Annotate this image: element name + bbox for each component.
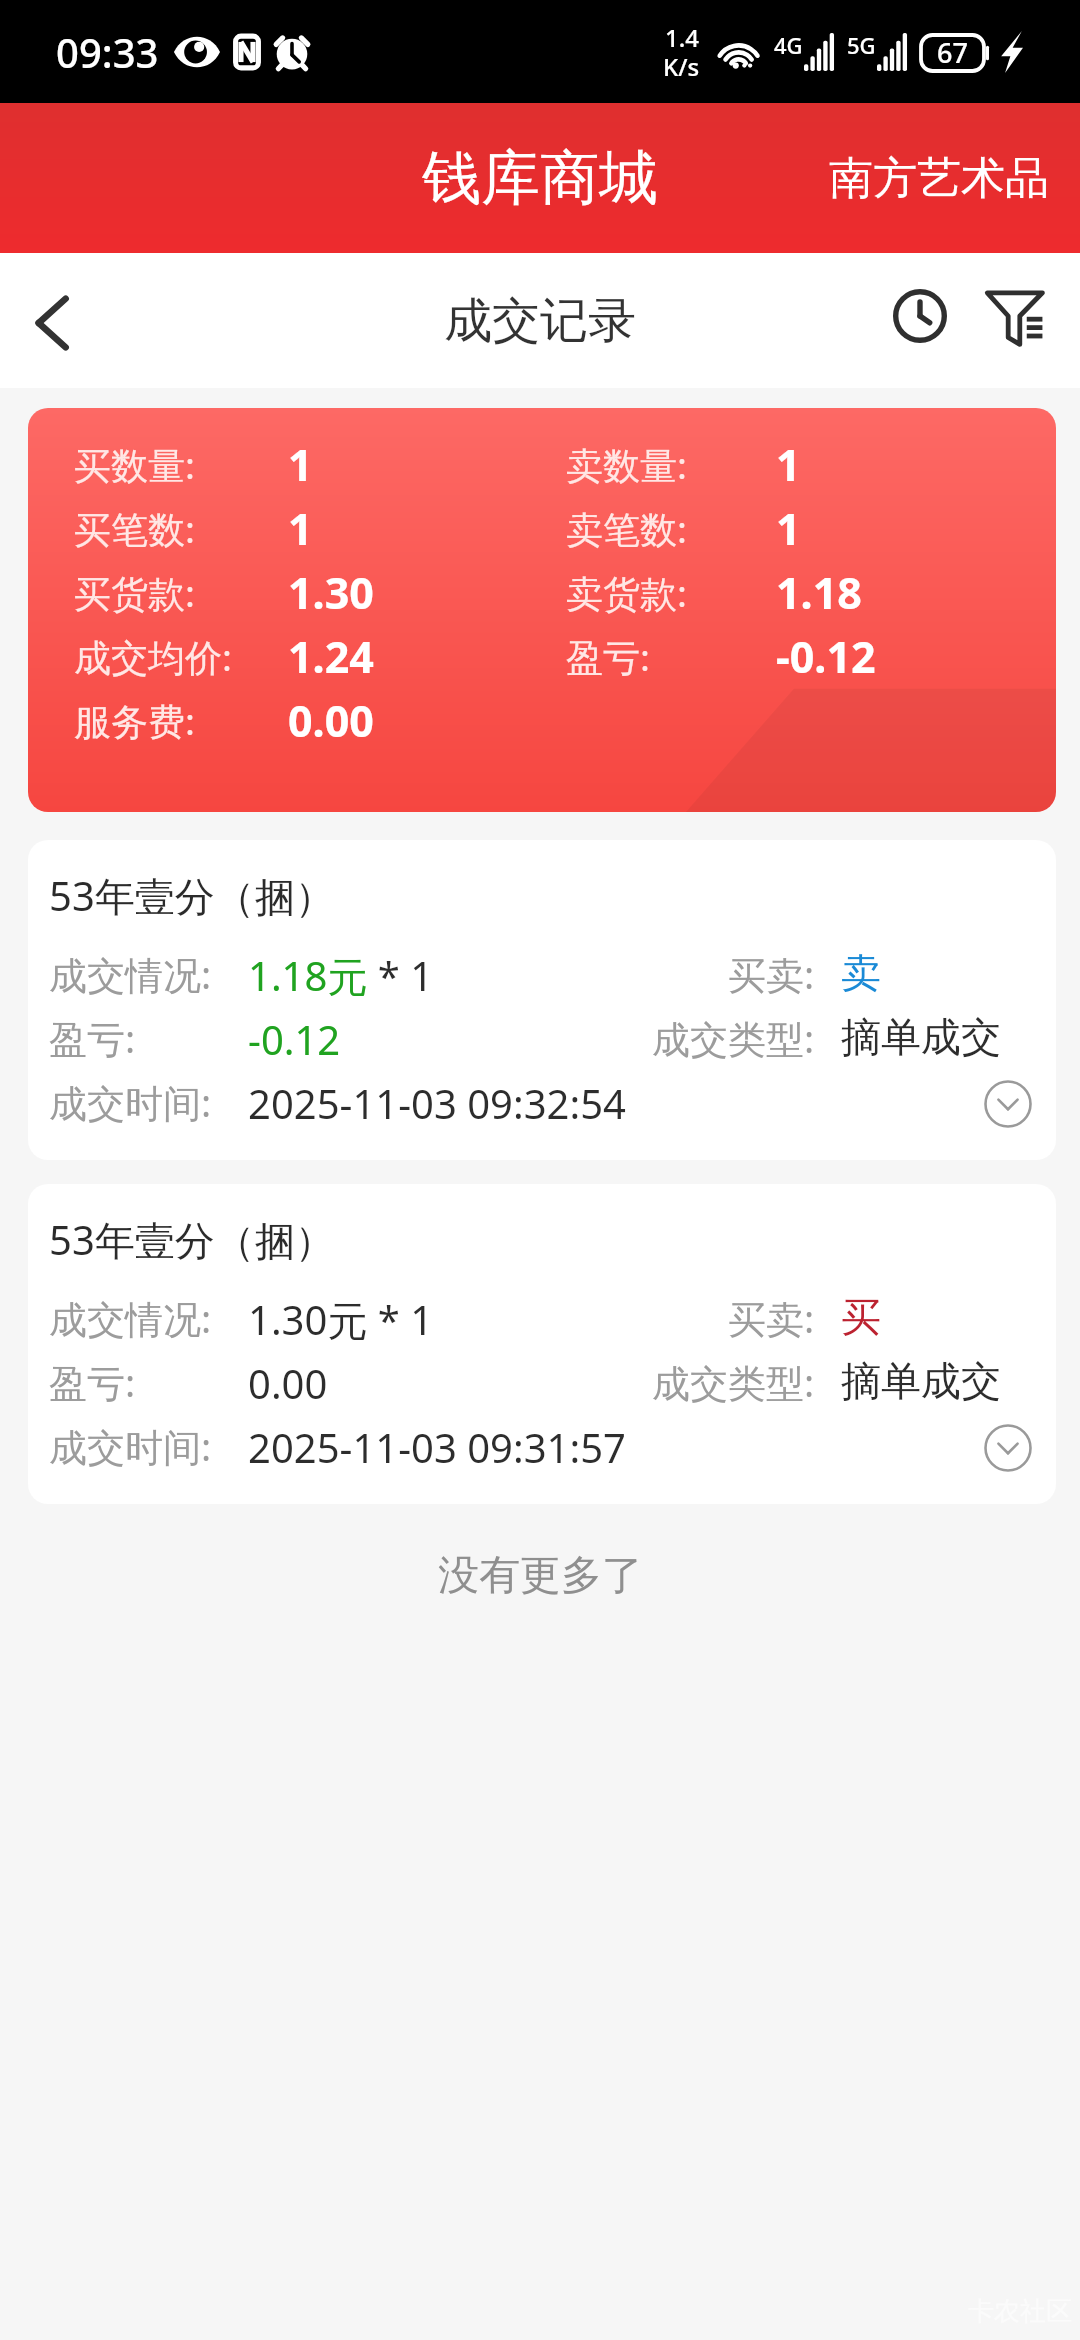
staticText: 1.4 xyxy=(665,21,699,54)
staticText: 1.18 xyxy=(776,563,862,622)
staticText: 买数量: xyxy=(74,439,195,490)
staticText: 53年壹分（捆） xyxy=(49,1212,335,1267)
button[interactable]: 买数量: xyxy=(28,408,1056,812)
staticText: 没有更多了 xyxy=(438,1550,643,1602)
staticText: 1.24 xyxy=(288,627,374,686)
button[interactable]: Expand details xyxy=(976,1072,1040,1136)
staticText: 买 xyxy=(841,1292,881,1342)
staticText: 1.30元 * 1 xyxy=(248,1292,434,1347)
staticText: 买卖: xyxy=(728,1292,815,1344)
staticText: 1.30 xyxy=(288,563,374,622)
staticText: 卖数量: xyxy=(566,439,687,490)
staticText: 2025-11-03 09:31:57 xyxy=(248,1420,626,1474)
staticText: 1 xyxy=(288,435,313,494)
button[interactable]: History xyxy=(874,256,966,376)
staticText: 1 xyxy=(776,499,801,558)
staticText: 成交类型: xyxy=(652,1356,815,1408)
staticText: 卖笔数: xyxy=(566,503,687,554)
staticText: -0.12 xyxy=(776,627,876,686)
button[interactable]: Filter xyxy=(968,256,1060,376)
staticText: 53年壹分（捆） xyxy=(49,868,335,923)
staticText: 买卖: xyxy=(728,948,815,1000)
staticText: 5G xyxy=(847,30,876,60)
staticText: 成交记录 xyxy=(444,291,636,351)
staticText: 09:33 xyxy=(56,25,159,79)
button[interactable]: Expand details xyxy=(976,1416,1040,1480)
staticText: 0.00 xyxy=(248,1356,328,1410)
staticText: 2025-11-03 09:32:54 xyxy=(248,1076,626,1130)
staticText: 盈亏: xyxy=(49,1356,136,1408)
staticText: 买笔数: xyxy=(74,503,195,554)
staticText: 1 xyxy=(288,499,313,558)
staticText: -0.12 xyxy=(248,1012,341,1066)
staticText: 买货款: xyxy=(74,567,195,618)
staticText: K/s xyxy=(663,50,700,83)
staticText: 服务费: xyxy=(74,695,195,746)
staticText: 成交均价: xyxy=(74,631,232,682)
staticText: 成交时间: xyxy=(49,1076,212,1128)
staticText: 卖 xyxy=(841,948,881,998)
staticText: 盈亏: xyxy=(49,1012,136,1064)
staticText: 成交情况: xyxy=(49,1292,212,1344)
button[interactable]: 53年壹分（捆） xyxy=(28,840,1056,1160)
staticText: 摘单成交 xyxy=(841,1356,1001,1406)
staticText: 盈亏: xyxy=(566,631,650,682)
staticText: 成交时间: xyxy=(49,1420,212,1472)
staticText: 成交类型: xyxy=(652,1012,815,1064)
staticText: 4G xyxy=(774,30,803,60)
staticText: 1.18元 * 1 xyxy=(248,948,434,1003)
staticText: 1 xyxy=(776,435,801,494)
staticText: 卖货款: xyxy=(566,567,687,618)
button[interactable]: 53年壹分（捆） xyxy=(28,1184,1056,1504)
staticText: 成交情况: xyxy=(49,948,212,1000)
staticText: 摘单成交 xyxy=(841,1012,1001,1062)
staticText: 南方艺术品 xyxy=(829,151,1049,206)
staticText: 0.00 xyxy=(288,691,374,750)
staticText: 67 xyxy=(937,34,968,71)
button[interactable]: Back xyxy=(0,261,104,381)
staticText: 钱库商城 xyxy=(422,141,658,215)
